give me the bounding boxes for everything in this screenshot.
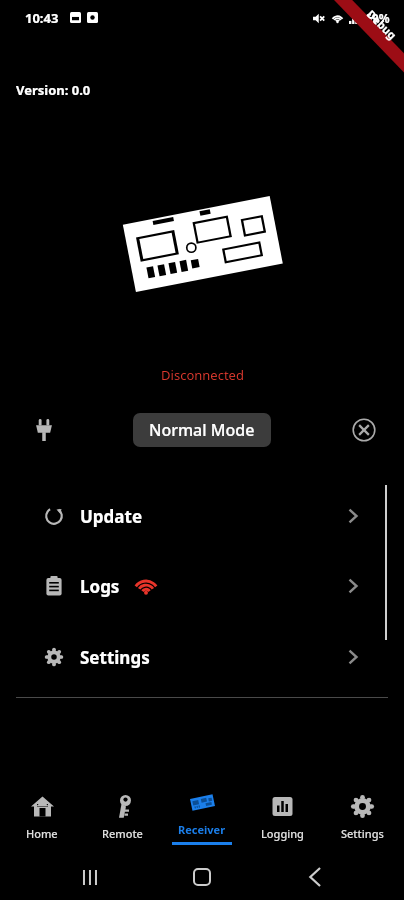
button[interactable]: Settings <box>0 633 404 681</box>
staticText: Home <box>26 826 58 841</box>
staticText: Logs <box>80 575 120 598</box>
button[interactable]: Normal Mode <box>133 413 271 447</box>
staticText: Logging <box>261 826 304 841</box>
staticText: Disconnected <box>161 366 244 384</box>
button[interactable]: Home <box>179 854 225 900</box>
button[interactable]: Recents <box>67 854 113 900</box>
staticText: Settings <box>80 646 150 669</box>
button[interactable]: Connect <box>24 410 64 450</box>
button[interactable]: Logging <box>244 780 320 854</box>
button[interactable]: Logs <box>0 562 404 610</box>
staticText: Receiver <box>178 822 226 837</box>
staticText: 69% <box>365 10 390 26</box>
button[interactable]: Disconnect <box>344 410 384 450</box>
staticText: Version: 0.0 <box>16 81 91 99</box>
staticText: Normal Mode <box>149 419 255 441</box>
button[interactable]: Back <box>292 854 338 900</box>
button[interactable]: Update <box>0 492 404 540</box>
staticText: 10:43 <box>25 9 59 27</box>
button[interactable]: Remote <box>84 780 160 854</box>
button[interactable]: Home <box>4 780 80 854</box>
staticText: Remote <box>102 826 143 841</box>
staticText: Debug <box>364 6 400 43</box>
staticText: Settings <box>341 826 384 841</box>
button[interactable]: Receiver <box>164 780 240 854</box>
button[interactable]: Settings <box>324 780 400 854</box>
staticText: Update <box>80 505 143 528</box>
